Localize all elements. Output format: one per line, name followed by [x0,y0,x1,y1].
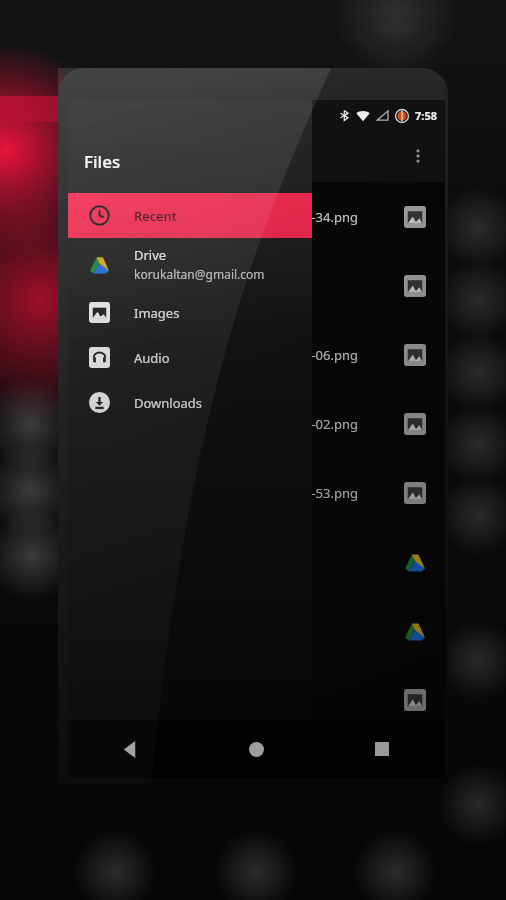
staticText: Files [84,150,121,173]
staticText: korukaltan@gmail.com [134,266,265,282]
button[interactable]: Home [193,720,319,778]
button[interactable]: Drive [68,238,312,290]
button[interactable]: 6-02.png [68,389,445,458]
staticText: 6-53.png [304,484,359,502]
button[interactable] [68,665,445,734]
button[interactable] [68,596,445,665]
staticText: Recent [134,207,177,225]
staticText: Drive [134,246,167,264]
button[interactable]: Images [68,290,312,335]
button[interactable] [68,527,445,596]
staticText: 7:58 [415,108,437,123]
button[interactable]: Downloads [68,380,312,425]
staticText: 6-06.png [304,346,359,364]
button[interactable]: 6-53.png [68,458,445,527]
staticText: 6-02.png [304,415,359,433]
staticText: Downloads [134,394,203,412]
button[interactable]: Audio [68,335,312,380]
button[interactable]: Recent [68,193,312,238]
staticText: Audio [134,349,170,367]
button[interactable]: More options [397,135,439,177]
button[interactable]: 7-34.png [68,182,445,251]
button[interactable]: Back [68,720,193,778]
staticText: 7-34.png [304,208,359,226]
staticText: Images [134,304,180,322]
button[interactable] [68,251,445,320]
button[interactable]: 6-06.png [68,320,445,389]
button[interactable]: Recents [319,720,445,778]
